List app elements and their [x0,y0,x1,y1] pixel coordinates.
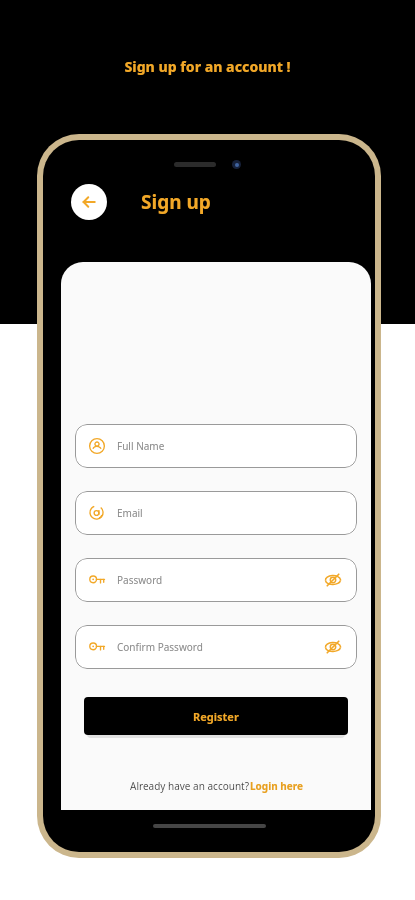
button[interactable]: Show password [323,570,343,590]
button[interactable]: Login here [250,779,303,793]
staticText: Full Name [117,439,165,453]
staticText: Sign up [141,189,211,215]
button[interactable]: Register [84,697,348,735]
staticText: Login here [250,779,303,793]
button[interactable]: Back [71,184,107,220]
button[interactable]: Password [75,558,357,602]
button[interactable]: Email [75,491,357,535]
staticText: Already have an account? [130,779,250,793]
button[interactable]: Show password [323,637,343,657]
staticText: Password [117,573,163,587]
staticText: Register [193,709,239,724]
button[interactable]: Confirm Password [75,625,357,669]
staticText: Confirm Password [117,640,203,654]
staticText: Sign up for an account ! [124,57,291,76]
button[interactable]: Full Name [75,424,357,468]
staticText: Email [117,506,143,520]
